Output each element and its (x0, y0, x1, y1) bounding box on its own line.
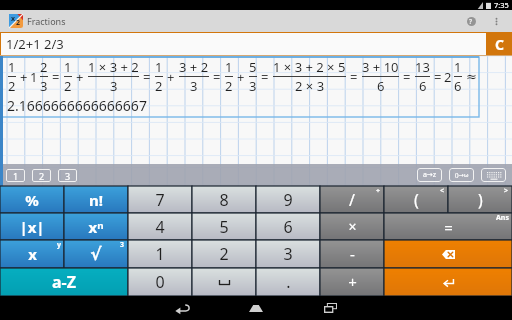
button[interactable]: |x| (0, 213, 64, 240)
staticText: 1 (13, 170, 19, 182)
staticText: n! (89, 190, 103, 210)
staticText: 1 × 3 + 2 × 5 (273, 58, 346, 76)
staticText: 1 (454, 58, 462, 76)
staticText: 2 (444, 68, 452, 86)
staticText: ÷ (376, 186, 381, 196)
staticText: + (167, 68, 175, 86)
button[interactable]: 0 (128, 268, 192, 296)
button[interactable]: √ (64, 240, 128, 268)
button[interactable]: Home (239, 297, 273, 319)
button[interactable]: 3 (58, 169, 77, 182)
button[interactable]: 6 (256, 213, 320, 240)
staticText: 2 × 3 (295, 77, 325, 95)
button[interactable]: Enter (384, 268, 512, 296)
staticText: |x| (19, 217, 45, 237)
staticText: . (286, 271, 291, 293)
staticText: / (349, 189, 355, 211)
staticText: 6 (454, 77, 462, 95)
staticText: xⁿ (88, 217, 104, 237)
staticText: 1/2+1 2/3 (6, 35, 64, 53)
staticText: 5 (219, 216, 229, 238)
button[interactable]: Back (165, 297, 199, 319)
staticText: 7:35 (494, 0, 509, 10)
button[interactable]: 8 (192, 186, 256, 213)
staticText: 6 (283, 216, 293, 238)
staticText: = (143, 68, 151, 86)
staticText: 3 (190, 77, 198, 95)
button[interactable]: Space (192, 268, 256, 296)
staticText: 2 (8, 77, 16, 95)
button[interactable]: = (384, 213, 512, 240)
staticText: 2 (39, 170, 45, 182)
button[interactable]: n! (64, 186, 128, 213)
button[interactable]: Variable mode (417, 168, 442, 182)
staticText: 8 (219, 189, 229, 211)
staticText: 2 (225, 77, 233, 95)
staticText: = (52, 68, 60, 86)
staticText: ≈ (466, 69, 477, 84)
staticText: 2 (155, 77, 163, 95)
staticText: x (28, 244, 37, 264)
button[interactable]: a-Z (0, 268, 128, 296)
button[interactable]: Help (461, 11, 481, 31)
staticText: 3 (65, 170, 71, 182)
staticText: C (495, 35, 504, 54)
button[interactable]: xⁿ (64, 213, 128, 240)
staticText: 3 + 2 (179, 58, 209, 76)
button[interactable]: 1/2+1 2/3 (1, 33, 486, 55)
button[interactable]: 1 (6, 169, 25, 182)
button[interactable]: x (0, 240, 64, 268)
button[interactable]: % (0, 186, 64, 213)
staticText: 1 (155, 58, 163, 76)
button[interactable]: - (320, 240, 384, 268)
staticText: 9 (283, 189, 293, 211)
button[interactable]: 1 (128, 240, 192, 268)
button[interactable]: 2 (32, 169, 51, 182)
button[interactable]: Recents (313, 297, 347, 319)
staticText: √ (90, 244, 102, 264)
staticText: 5 (249, 58, 257, 76)
staticText: 4 (155, 216, 165, 238)
staticText: = (434, 68, 442, 86)
button[interactable]: More options (488, 13, 504, 29)
staticText: 2 (40, 58, 48, 76)
staticText: ( (414, 189, 419, 211)
button[interactable]: C (487, 32, 512, 56)
staticText: 3 (249, 77, 257, 95)
staticText: ) (478, 189, 483, 211)
staticText: 3 (120, 240, 125, 250)
staticText: - (350, 244, 355, 264)
button[interactable]: ( (384, 186, 448, 213)
button[interactable]: Backspace (384, 240, 512, 268)
staticText: 0 (155, 271, 165, 293)
staticText: 13 (415, 58, 430, 76)
staticText: 2 (16, 18, 21, 28)
button[interactable]: 7 (128, 186, 192, 213)
staticText: Fractions (27, 15, 66, 27)
staticText: > (504, 186, 509, 196)
button[interactable]: 2 (192, 240, 256, 268)
button[interactable]: / (320, 186, 384, 213)
staticText: 1 (225, 58, 233, 76)
button[interactable]: × (320, 213, 384, 240)
staticText: 2 (64, 77, 72, 95)
button[interactable]: 9 (256, 186, 320, 213)
staticText: ? (469, 17, 473, 26)
staticText: < (440, 186, 445, 196)
button[interactable]: . (256, 268, 320, 296)
staticText: x (11, 14, 16, 24)
button[interactable]: 5 (192, 213, 256, 240)
button[interactable]: 4 (128, 213, 192, 240)
button[interactable]: Decimal mode (449, 168, 474, 182)
staticText: = (261, 68, 269, 86)
button[interactable]: Keyboard (481, 168, 506, 182)
button[interactable]: + (320, 268, 384, 296)
staticText: 2 (219, 243, 229, 265)
staticText: + (20, 68, 28, 86)
staticText: y (57, 240, 61, 250)
staticText: 1 × 3 + 2 (88, 58, 139, 76)
staticText: = (403, 68, 411, 86)
button[interactable]: 3 (256, 240, 320, 268)
button[interactable]: ) (448, 186, 512, 213)
staticText: % (25, 190, 39, 210)
